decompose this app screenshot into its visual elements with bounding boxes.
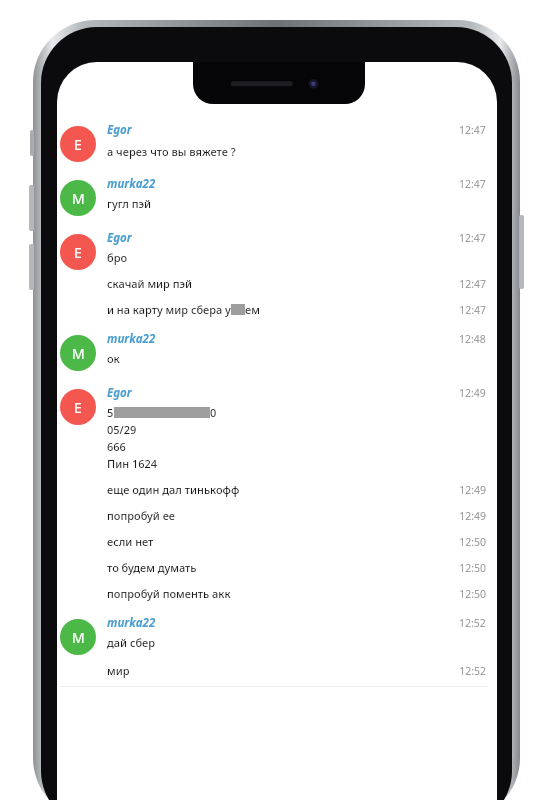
button[interactable]: еще один дал тинькофф <box>107 471 488 497</box>
staticText: E <box>74 398 82 417</box>
staticText: 5 <box>107 405 114 420</box>
staticText: попробуй поменть акк <box>107 586 231 601</box>
staticText: E <box>74 243 82 262</box>
staticText: ем <box>245 302 260 317</box>
button[interactable]: если нет <box>107 523 488 549</box>
button[interactable]: murka22 <box>107 331 156 347</box>
button[interactable]: E <box>60 389 96 425</box>
staticText: 12:47 <box>459 231 486 245</box>
button[interactable]: M <box>60 180 96 216</box>
other: Power <box>519 215 524 289</box>
staticText: 12:49 <box>459 483 486 497</box>
button[interactable]: дай сбер <box>107 631 488 650</box>
staticText: скачай мир пэй <box>107 276 193 291</box>
staticText: 12:52 <box>459 616 486 630</box>
staticText: и на карту мир сбера у <box>107 302 231 317</box>
button[interactable]: E <box>60 126 96 162</box>
staticText: 12:48 <box>459 332 486 346</box>
staticText: дай сбер <box>107 635 156 650</box>
button[interactable]: M <box>60 335 96 371</box>
button[interactable]: M <box>60 619 96 655</box>
staticText: 12:49 <box>459 386 486 400</box>
button[interactable]: E <box>60 234 96 270</box>
button[interactable]: murka22 <box>107 615 156 631</box>
button[interactable]: мир <box>107 650 488 678</box>
button[interactable]: 5 <box>107 401 488 420</box>
other: Volume down <box>29 244 34 290</box>
staticText: 12:47 <box>459 303 486 317</box>
staticText: M <box>72 628 85 647</box>
staticText: то будем думать <box>107 560 197 575</box>
staticText: 12:47 <box>459 123 486 137</box>
button[interactable]: Пин 1624 <box>107 454 488 471</box>
button[interactable]: Egor <box>107 385 132 401</box>
staticText: мир <box>107 663 130 678</box>
button[interactable]: попробуй поменть акк <box>107 575 488 601</box>
staticText: 0 <box>210 405 217 420</box>
staticText: 12:50 <box>459 561 486 575</box>
staticText: 12:50 <box>459 535 486 549</box>
staticText: попробуй ее <box>107 508 175 523</box>
staticText: 12:47 <box>459 177 486 191</box>
button[interactable]: 05/29 <box>107 420 488 437</box>
button[interactable]: 666 <box>107 437 488 454</box>
button[interactable]: то будем думать <box>107 549 488 575</box>
staticText: бро <box>107 250 128 265</box>
staticText: E <box>74 135 82 154</box>
staticText: 05/29 <box>107 422 137 437</box>
button[interactable]: ок <box>107 347 488 366</box>
other: Volume up <box>29 185 34 231</box>
button[interactable]: а через что вы вяжете ? <box>107 138 488 159</box>
button[interactable]: скачай мир пэй <box>107 265 488 291</box>
staticText: если нет <box>107 534 154 549</box>
staticText: Пин 1624 <box>107 456 158 471</box>
button[interactable]: и на карту мир сбера у <box>107 291 488 317</box>
staticText: еще один дал тинькофф <box>107 482 240 497</box>
staticText: 666 <box>107 439 126 454</box>
button[interactable]: гугл пэй <box>107 192 488 211</box>
staticText: ок <box>107 351 120 366</box>
staticText: M <box>72 189 85 208</box>
button[interactable]: Egor <box>107 230 132 246</box>
staticText: гугл пэй <box>107 196 152 211</box>
button[interactable]: попробуй ее <box>107 497 488 523</box>
staticText: 12:52 <box>459 664 486 678</box>
other: Silent switch <box>30 130 34 156</box>
staticText: 12:49 <box>459 509 486 523</box>
button[interactable]: murka22 <box>107 176 156 192</box>
staticText: M <box>72 344 85 363</box>
button[interactable]: бро <box>107 246 488 265</box>
staticText: а через что вы вяжете ? <box>107 144 236 159</box>
staticText: 12:47 <box>459 277 486 291</box>
staticText: 12:50 <box>459 587 486 601</box>
button[interactable]: Egor <box>107 122 132 138</box>
